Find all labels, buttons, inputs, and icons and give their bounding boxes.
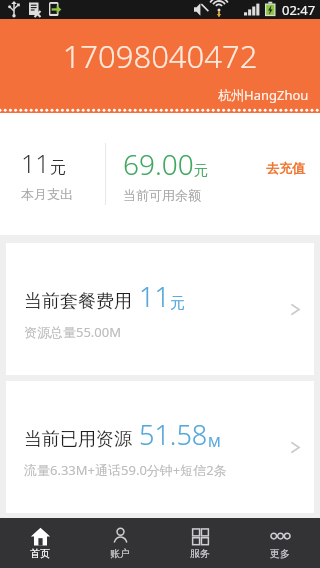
staticText: 当前已用资源 xyxy=(24,428,132,451)
staticText: M xyxy=(208,432,221,451)
staticText: 元 xyxy=(170,294,185,313)
staticText: 更多 xyxy=(270,547,290,560)
staticText: 51.58 xyxy=(139,416,208,453)
staticText: 杭州HangZhou xyxy=(218,86,309,104)
button[interactable]: 当前已用资源 xyxy=(6,381,314,513)
staticText: 元 xyxy=(50,158,66,178)
staticText: 资源总量55.00M xyxy=(24,323,122,341)
button[interactable]: 去充值 xyxy=(262,156,309,180)
staticText: 11 xyxy=(139,278,170,315)
staticText: 服务 xyxy=(190,547,210,560)
button[interactable]: 服务 xyxy=(160,518,240,568)
staticText: 本月支出 xyxy=(21,186,73,202)
button[interactable]: 更多 xyxy=(240,518,320,568)
staticText: 当前可用余额 xyxy=(123,187,201,203)
staticText: 元 xyxy=(194,162,208,180)
staticText: 去充值 xyxy=(266,160,305,176)
staticText: 17098040472 xyxy=(0,35,320,77)
staticText: 69.00 xyxy=(123,145,194,183)
button[interactable]: 账户 xyxy=(80,518,160,568)
button[interactable]: 首页 xyxy=(0,518,80,568)
staticText: 首页 xyxy=(30,547,50,560)
staticText: 流量6.33M+通话59.0分钟+短信2条 xyxy=(24,461,227,479)
staticText: 账户 xyxy=(110,547,130,560)
staticText: 11 xyxy=(21,146,50,180)
button[interactable]: 当前套餐费用 xyxy=(6,243,314,375)
staticText: 02:47 xyxy=(282,1,316,19)
staticText: 当前套餐费用 xyxy=(24,290,132,313)
